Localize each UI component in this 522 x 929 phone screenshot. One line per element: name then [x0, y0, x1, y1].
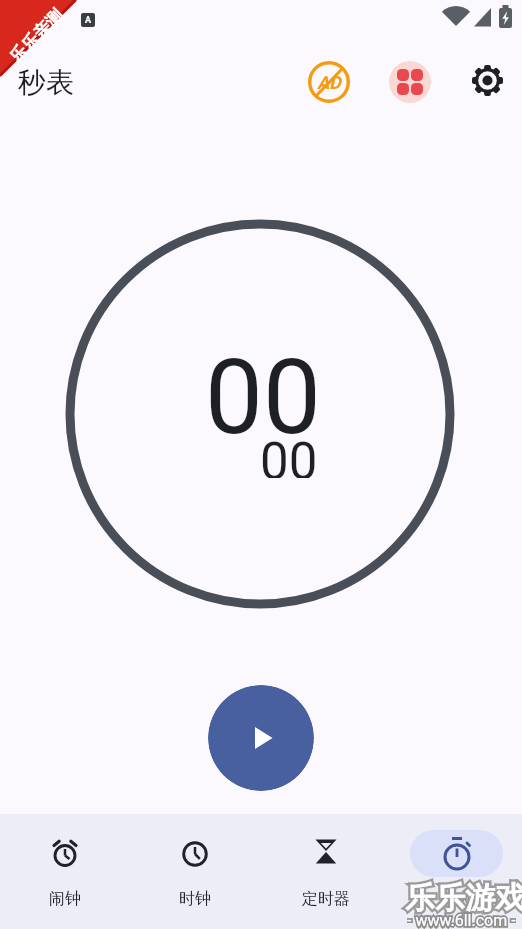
staticText: 00: [260, 432, 318, 478]
button[interactable]: AD: [308, 61, 350, 103]
staticText: 乐乐亲测: [5, 5, 68, 68]
button[interactable]: [208, 685, 314, 791]
staticText: 时钟: [179, 889, 211, 909]
staticText: 秒表: [18, 65, 74, 100]
button[interactable]: 秒表: [391, 814, 522, 910]
button[interactable]: [468, 61, 507, 100]
staticText: - www.6ll.com -: [407, 911, 516, 929]
staticText: - www.6ll.com -: [407, 911, 516, 929]
staticText: 00: [205, 337, 321, 439]
button[interactable]: 定时器: [260, 814, 391, 909]
button[interactable]: 时钟: [130, 814, 260, 909]
staticText: 定时器: [302, 889, 350, 909]
button[interactable]: 闹钟: [0, 814, 130, 909]
button[interactable]: [389, 61, 431, 103]
staticText: 乐乐游戏: [405, 879, 522, 917]
staticText: 乐乐游戏: [405, 879, 522, 917]
staticText: 闹钟: [49, 889, 81, 909]
staticText: 秒表: [441, 890, 473, 910]
staticText: AD: [317, 72, 341, 93]
staticText: A: [85, 15, 92, 26]
